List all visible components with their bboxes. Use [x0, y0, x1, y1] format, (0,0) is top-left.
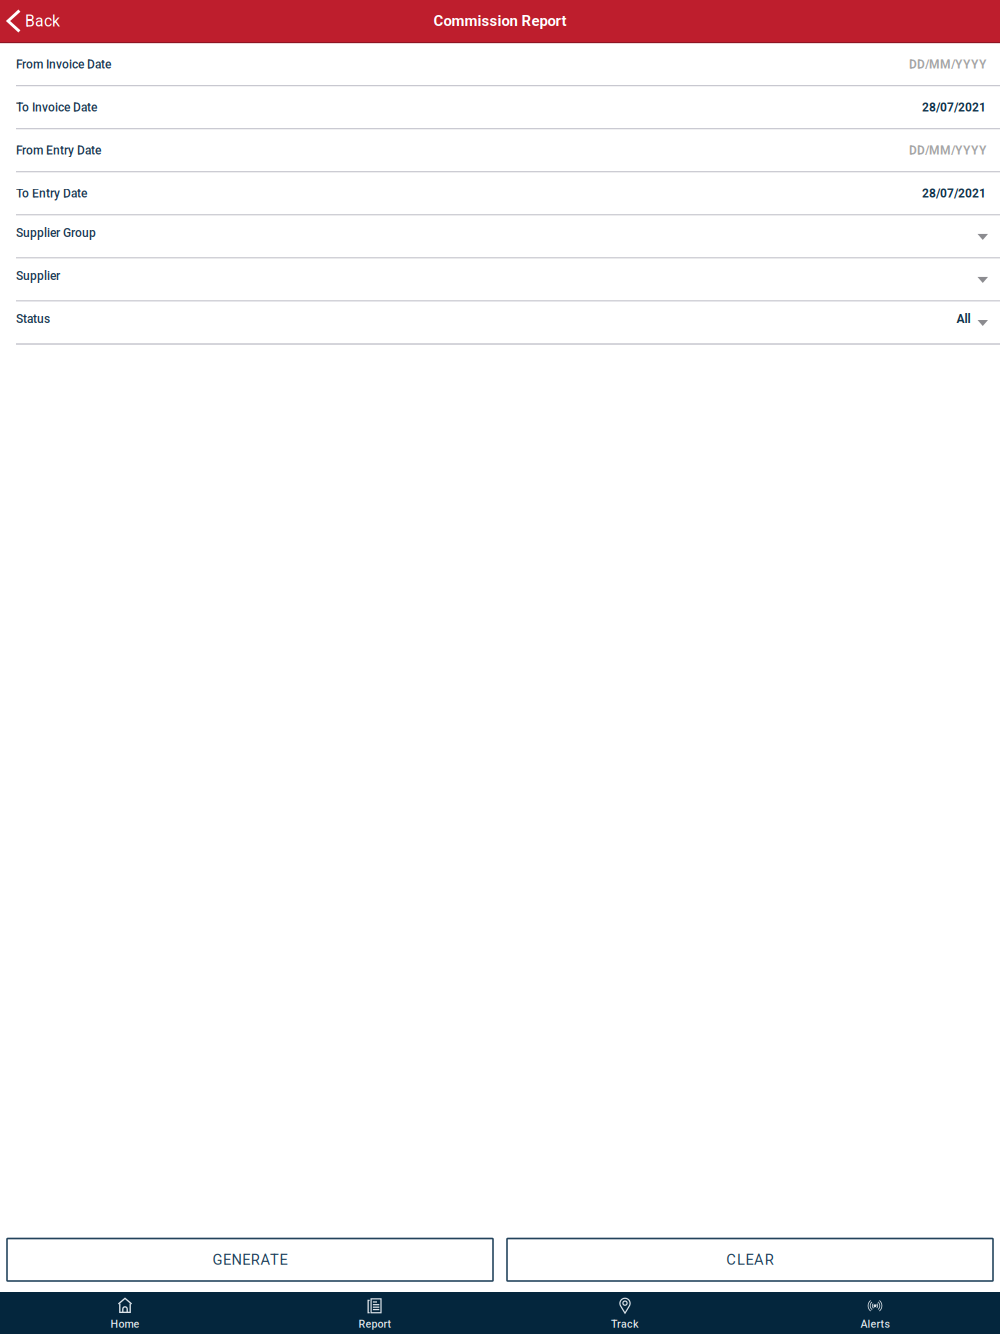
- button[interactable]: Back: [0, 0, 70, 42]
- button[interactable]: Status: [0, 302, 1000, 345]
- staticText: Commission Report: [433, 12, 566, 30]
- staticText: GENERATE: [212, 1251, 288, 1268]
- button[interactable]: From Entry Date: [0, 129, 1000, 172]
- button[interactable]: To Invoice Date: [0, 86, 1000, 129]
- staticText: Track: [611, 1318, 639, 1330]
- staticText: Back: [25, 12, 60, 30]
- staticText: DD/MM/YYYY: [909, 57, 986, 71]
- staticText: Alerts: [860, 1318, 889, 1330]
- staticText: To Invoice Date: [16, 100, 97, 114]
- staticText: From Invoice Date: [16, 57, 111, 71]
- button[interactable]: Supplier Group: [0, 215, 1000, 258]
- staticText: Report: [358, 1318, 391, 1330]
- staticText: Status: [16, 312, 50, 326]
- staticText: CLEAR: [726, 1251, 774, 1268]
- button[interactable]: Alerts: [750, 1292, 1000, 1334]
- button[interactable]: Report: [250, 1292, 500, 1334]
- staticText: DD/MM/YYYY: [909, 143, 986, 157]
- button[interactable]: GENERATE: [7, 1238, 493, 1281]
- button[interactable]: Supplier: [0, 259, 1000, 302]
- staticText: Home: [110, 1318, 139, 1330]
- staticText: To Entry Date: [16, 186, 87, 200]
- button[interactable]: CLEAR: [507, 1238, 993, 1281]
- button[interactable]: Track: [500, 1292, 750, 1334]
- button[interactable]: Home: [0, 1292, 250, 1334]
- button[interactable]: From Invoice Date: [0, 43, 1000, 86]
- staticText: All: [956, 312, 970, 326]
- staticText: 28/07/2021: [922, 100, 986, 114]
- staticText: Supplier: [16, 269, 60, 283]
- staticText: From Entry Date: [16, 143, 101, 157]
- staticText: Supplier Group: [16, 226, 96, 240]
- staticText: 28/07/2021: [922, 186, 986, 200]
- button[interactable]: To Entry Date: [0, 172, 1000, 215]
